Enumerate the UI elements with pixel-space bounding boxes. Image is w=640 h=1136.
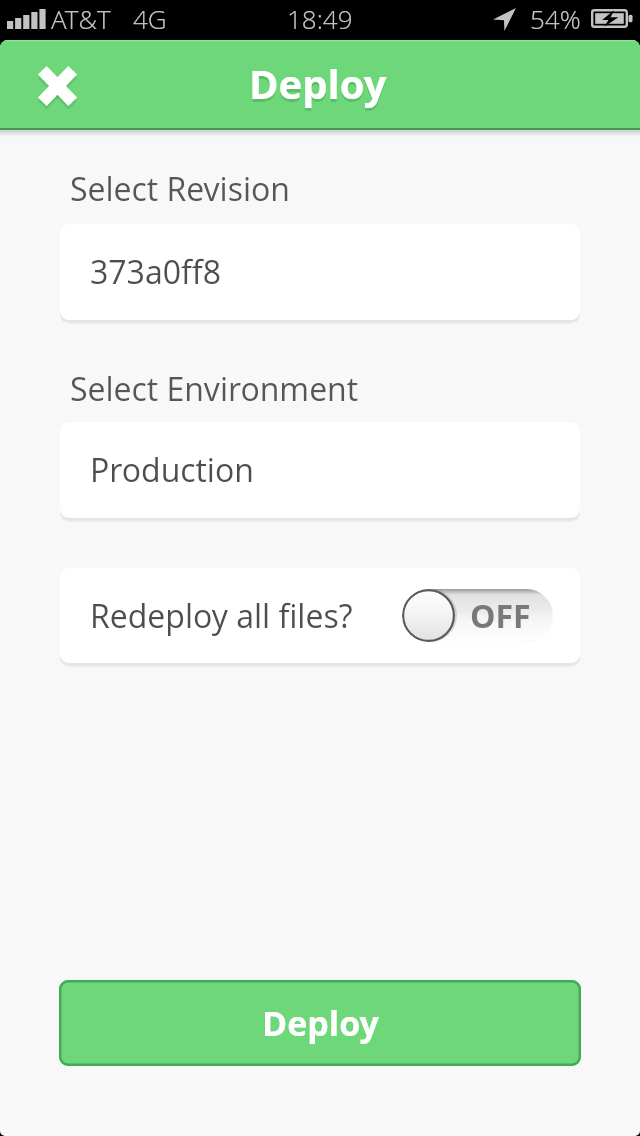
staticText: AT&T [51,1,111,36]
button[interactable]: Production [60,422,580,518]
staticText: Select Revision [70,167,290,211]
staticText: OFF [470,594,531,638]
button[interactable]: 373a0ff8 [60,224,580,320]
staticText: Deploy [262,1000,379,1046]
staticText: Deploy [249,56,387,110]
staticText: Production [90,448,254,492]
button[interactable]: Deploy [59,980,581,1066]
staticText: 373a0ff8 [90,250,221,294]
button[interactable]: Redeploy all files? [60,568,580,663]
button[interactable]: Close [0,40,116,128]
staticText: 18:49 [287,1,353,36]
staticText: Select Environment [70,367,359,411]
staticText: 4G [133,1,167,36]
staticText: 54% [530,1,581,36]
staticText: Redeploy all files? [90,594,353,638]
staticText: Deploy [249,59,387,113]
